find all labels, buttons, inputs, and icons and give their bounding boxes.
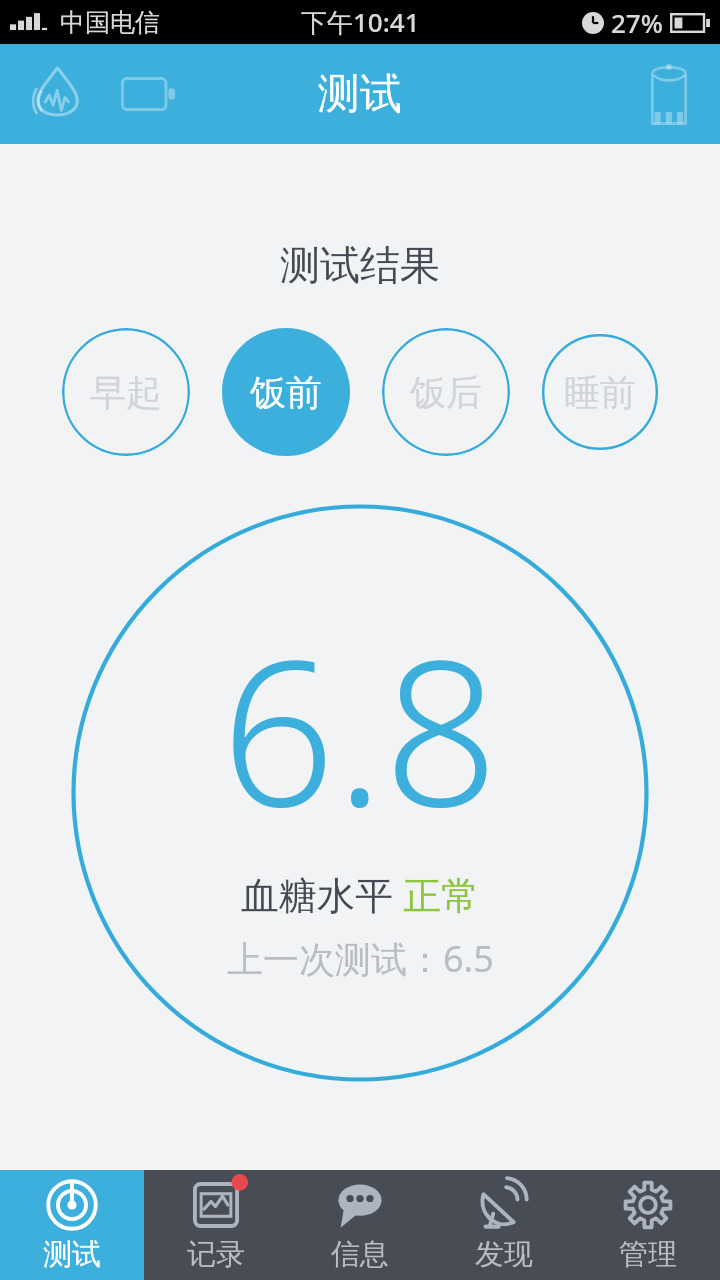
- button[interactable]: 早起: [62, 328, 190, 456]
- staticText: 测试: [318, 68, 402, 121]
- staticText: 测试: [43, 1236, 101, 1273]
- staticText: 6.8: [221, 592, 499, 864]
- staticText: 睡前: [564, 370, 636, 415]
- staticText: 管理: [619, 1236, 677, 1273]
- staticText: 27%: [611, 5, 663, 40]
- staticText: 中国电信: [60, 7, 160, 38]
- staticText: 发现: [475, 1236, 533, 1273]
- staticText: 信息: [331, 1236, 389, 1273]
- button[interactable]: Blood glucose: [14, 54, 94, 134]
- button[interactable]: 测试: [0, 1170, 144, 1280]
- staticText: 饭后: [410, 370, 482, 415]
- button[interactable]: Device: [632, 57, 706, 131]
- button[interactable]: Battery: [108, 54, 188, 134]
- staticText: 上一次测试：6.5: [227, 934, 494, 983]
- button[interactable]: 信息: [288, 1170, 432, 1280]
- button[interactable]: 发现: [432, 1170, 576, 1280]
- staticText: 下午10:41: [301, 4, 420, 40]
- staticText: 饭前: [250, 370, 322, 415]
- staticText: 记录: [187, 1236, 245, 1273]
- staticText: 早起: [90, 370, 162, 415]
- button[interactable]: 记录: [144, 1170, 288, 1280]
- button[interactable]: 饭后: [382, 328, 510, 456]
- button[interactable]: 饭前: [222, 328, 350, 456]
- button[interactable]: 管理: [576, 1170, 720, 1280]
- staticText: 测试结果: [280, 240, 440, 290]
- staticText: 血糖水平 正常: [241, 868, 479, 920]
- button[interactable]: 睡前: [542, 328, 658, 456]
